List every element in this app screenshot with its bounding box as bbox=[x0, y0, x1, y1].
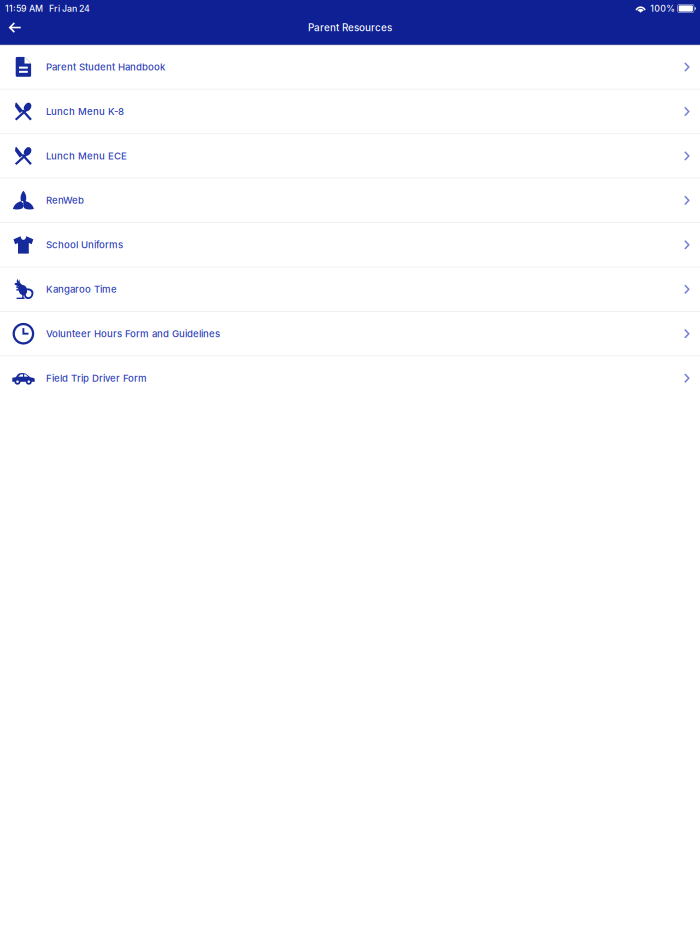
staticText: Fri Jan 24 bbox=[49, 3, 90, 14]
staticText: Kangaroo Time bbox=[46, 283, 117, 295]
staticText: Parent Student Handbook bbox=[46, 61, 165, 73]
button[interactable]: Volunteer Hours Form and Guidelines bbox=[0, 312, 700, 355]
staticText: School Uniforms bbox=[46, 239, 123, 251]
staticText: RenWeb bbox=[46, 195, 84, 206]
staticText: Field Trip Driver Form bbox=[46, 372, 147, 384]
button[interactable]: School Uniforms bbox=[0, 223, 700, 267]
button[interactable]: Parent Student Handbook bbox=[0, 45, 700, 89]
staticText: Parent Resources bbox=[308, 22, 392, 34]
staticText: 100% bbox=[650, 3, 675, 14]
button[interactable]: Back bbox=[0, 17, 29, 39]
button[interactable]: Field Trip Driver Form bbox=[0, 356, 700, 400]
button[interactable]: Kangaroo Time bbox=[0, 268, 700, 311]
button[interactable]: RenWeb bbox=[0, 179, 700, 222]
staticText: Lunch Menu K-8 bbox=[46, 106, 124, 117]
button[interactable]: Lunch Menu ECE bbox=[0, 134, 700, 178]
staticText: 11:59 AM bbox=[5, 3, 43, 14]
staticText: Volunteer Hours Form and Guidelines bbox=[46, 328, 220, 339]
staticText: Lunch Menu ECE bbox=[46, 150, 127, 162]
button[interactable]: Lunch Menu K-8 bbox=[0, 90, 700, 133]
